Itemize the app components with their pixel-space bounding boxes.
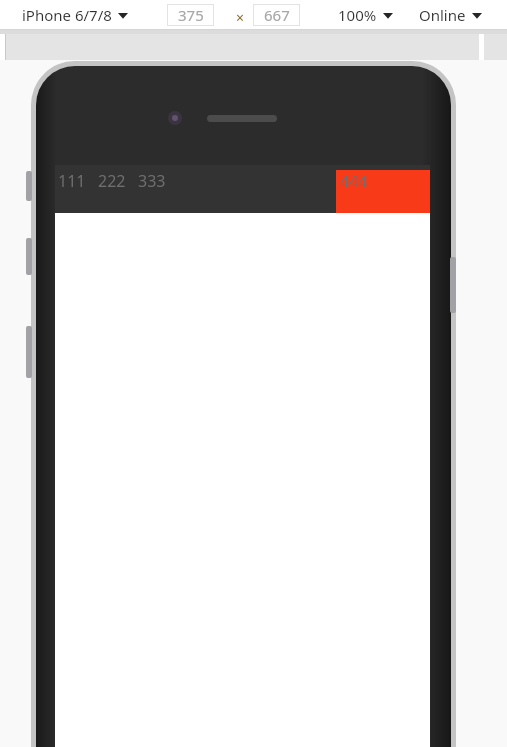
staticText: 222 [98, 170, 126, 192]
staticText: 667 [264, 5, 290, 25]
button[interactable]: 111 [58, 170, 86, 192]
staticText: 444 [340, 170, 368, 192]
button[interactable]: 222 [98, 170, 126, 192]
staticText: × [236, 8, 245, 27]
staticText: 100% [338, 5, 377, 25]
staticText: 111 [58, 170, 86, 192]
other: Silent switch [26, 171, 32, 201]
button[interactable]: Online [419, 0, 482, 29]
button[interactable]: 100% [338, 0, 393, 29]
button[interactable]: iPhone 6/7/8 [22, 0, 128, 29]
button[interactable]: 667 [253, 4, 300, 26]
other: Power [450, 257, 456, 313]
other: Volume down [26, 326, 32, 378]
button[interactable]: 375 [167, 4, 214, 26]
other: Volume up [26, 238, 32, 275]
staticText: 333 [138, 170, 166, 192]
staticText: 375 [178, 5, 204, 25]
staticText: Online [419, 5, 466, 25]
staticText: iPhone 6/7/8 [22, 5, 112, 25]
other: Front camera [168, 111, 182, 125]
button[interactable]: 444 [336, 170, 430, 213]
button[interactable]: 333 [138, 170, 166, 192]
